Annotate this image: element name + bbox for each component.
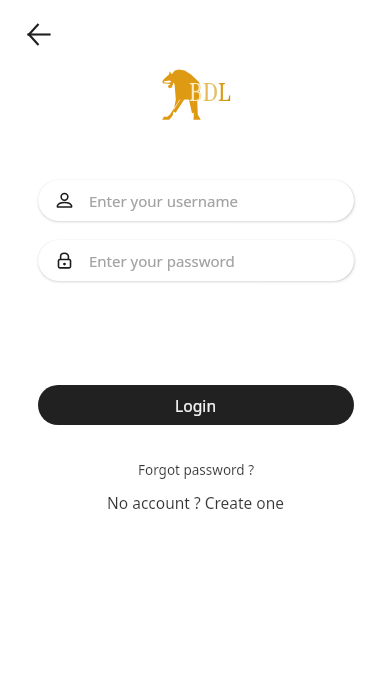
button[interactable]: No account ? Create one — [95, 486, 297, 519]
staticText: Login — [175, 395, 217, 416]
button[interactable]: Forgot password ? — [126, 455, 267, 485]
button[interactable]: Login — [38, 385, 354, 425]
button[interactable]: Enter your password — [38, 240, 354, 281]
staticText: Forgot password ? — [138, 461, 255, 479]
button[interactable]: Enter your username — [38, 180, 354, 221]
staticText: Enter your password — [89, 251, 235, 271]
button[interactable]: Back — [18, 14, 58, 54]
staticText: No account ? Create one — [107, 492, 285, 513]
staticText: Enter your username — [89, 191, 238, 211]
staticText: BDL — [189, 74, 232, 108]
